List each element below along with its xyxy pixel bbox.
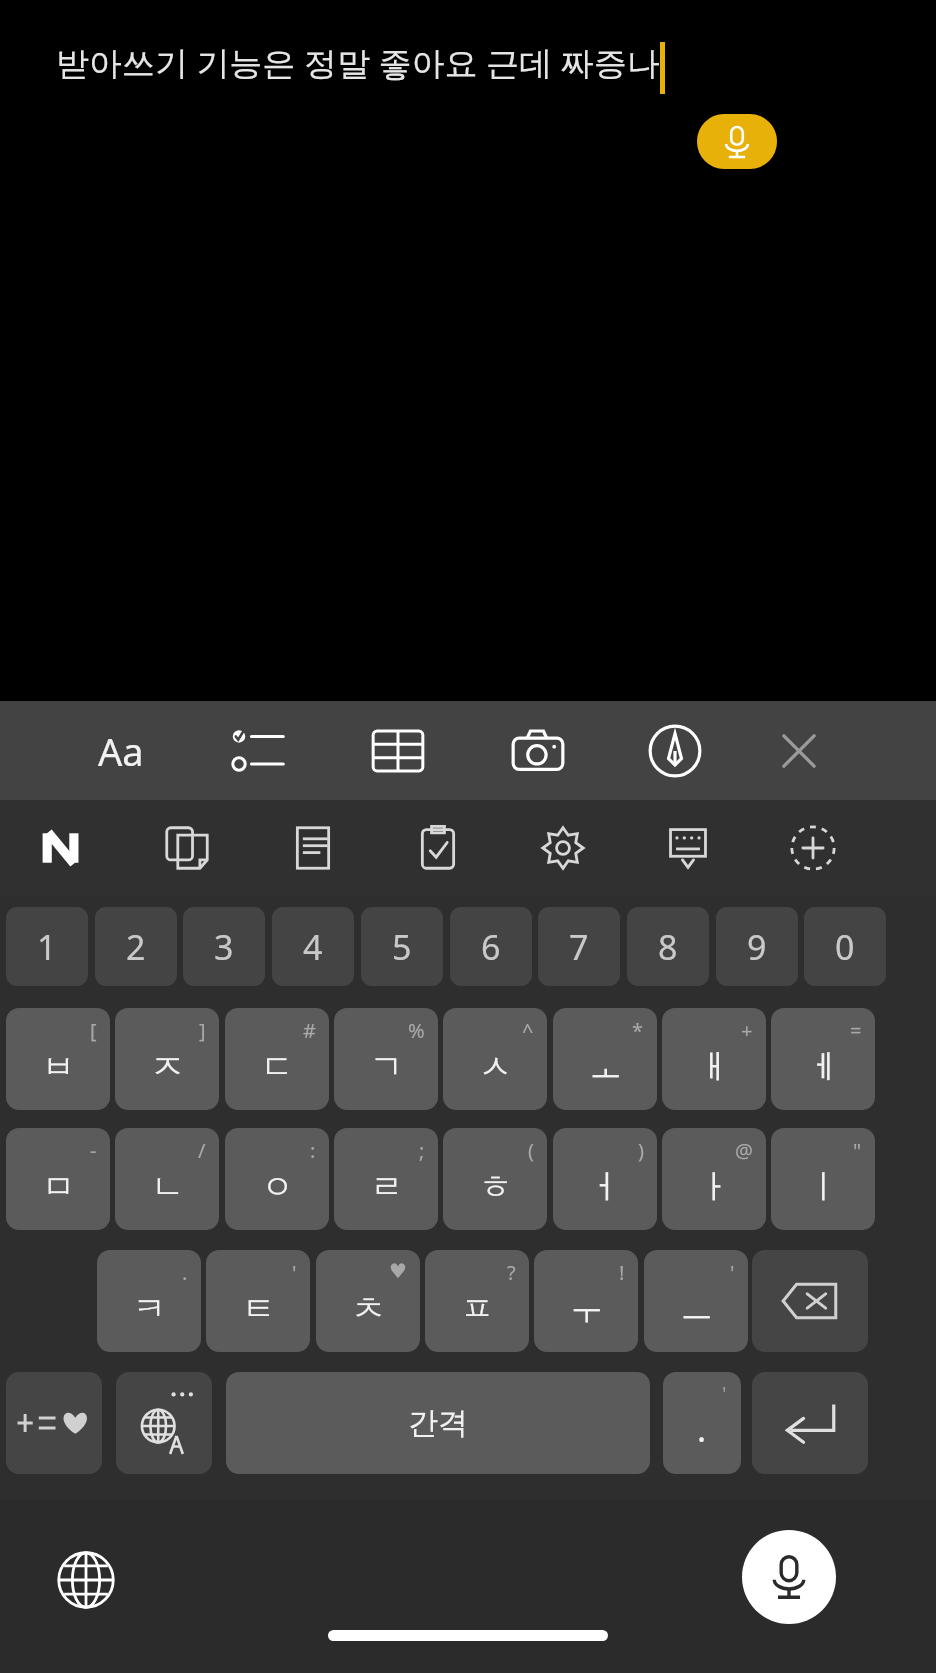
staticText: % bbox=[408, 1017, 425, 1044]
button[interactable]: [ bbox=[6, 1008, 110, 1110]
staticText: . bbox=[697, 1406, 707, 1452]
button[interactable]: - bbox=[6, 1128, 110, 1230]
staticText: ㅜ bbox=[570, 1288, 603, 1330]
staticText: 3 bbox=[214, 924, 234, 970]
staticText: 간격 bbox=[408, 1404, 468, 1442]
button[interactable]: Checklist bbox=[214, 706, 304, 796]
staticText: ♥ bbox=[389, 1259, 407, 1282]
button[interactable]: 7 bbox=[538, 907, 620, 986]
button[interactable]: * bbox=[553, 1008, 657, 1110]
staticText: 1 bbox=[37, 924, 57, 970]
button[interactable]: : bbox=[225, 1128, 329, 1230]
staticText: ㅏ bbox=[698, 1166, 731, 1208]
button[interactable]: Voice typing bbox=[742, 1530, 836, 1624]
button[interactable]: " bbox=[771, 1128, 875, 1230]
staticText: 받아쓰기 기능은 정말 좋아요 근데 짜증나 bbox=[56, 40, 660, 85]
staticText: ㅊ bbox=[352, 1288, 385, 1330]
button[interactable]: 4 bbox=[272, 907, 354, 986]
staticText: ; bbox=[419, 1137, 425, 1164]
button[interactable]: Change language bbox=[116, 1372, 212, 1474]
button[interactable]: Backspace bbox=[752, 1250, 868, 1352]
button[interactable]: 3 bbox=[183, 907, 265, 986]
button[interactable]: ' bbox=[206, 1250, 310, 1352]
button[interactable]: Close bbox=[754, 706, 844, 796]
staticText: 5 bbox=[392, 924, 412, 970]
staticText: / bbox=[198, 1137, 206, 1164]
staticText: " bbox=[853, 1137, 862, 1164]
staticText: ! bbox=[619, 1259, 625, 1286]
button[interactable]: ? bbox=[425, 1250, 529, 1352]
staticText: Aa bbox=[98, 725, 144, 777]
staticText: 9 bbox=[747, 924, 767, 970]
button[interactable]: Keyboard mode bbox=[646, 808, 730, 888]
staticText: . bbox=[182, 1259, 188, 1286]
staticText: ㄴ bbox=[151, 1166, 184, 1208]
button[interactable]: . bbox=[97, 1250, 201, 1352]
button[interactable]: Change keyboard bbox=[46, 1540, 126, 1620]
button[interactable]: More bbox=[771, 808, 855, 888]
button[interactable]: Symbols bbox=[6, 1372, 102, 1474]
button[interactable]: Camera bbox=[493, 706, 583, 796]
button[interactable]: Settings bbox=[521, 808, 605, 888]
button[interactable]: 2 bbox=[95, 907, 177, 986]
button[interactable]: . bbox=[663, 1372, 741, 1474]
staticText: ' bbox=[730, 1259, 735, 1286]
staticText: 2 bbox=[126, 924, 146, 970]
staticText: * bbox=[632, 1017, 644, 1044]
button[interactable]: = bbox=[771, 1008, 875, 1110]
button[interactable]: Sticker bbox=[145, 808, 229, 888]
button[interactable]: ; bbox=[334, 1128, 438, 1230]
button[interactable]: 8 bbox=[627, 907, 709, 986]
staticText: ㄱ bbox=[370, 1046, 403, 1088]
button[interactable]: 간격 bbox=[226, 1372, 650, 1474]
button[interactable]: Table bbox=[353, 706, 443, 796]
button[interactable]: ( bbox=[443, 1128, 547, 1230]
button[interactable]: 1 bbox=[6, 907, 88, 986]
button[interactable]: Draw bbox=[630, 706, 720, 796]
staticText: 8 bbox=[658, 924, 678, 970]
button[interactable]: ) bbox=[553, 1128, 657, 1230]
button[interactable]: @ bbox=[662, 1128, 766, 1230]
button[interactable]: # bbox=[225, 1008, 329, 1110]
button[interactable]: Text bbox=[271, 808, 355, 888]
button[interactable]: Enter bbox=[752, 1372, 868, 1474]
button[interactable]: Voice input bbox=[697, 114, 777, 169]
staticText: ㅣ bbox=[807, 1166, 840, 1208]
staticText: ? bbox=[507, 1259, 516, 1286]
button[interactable]: ^ bbox=[443, 1008, 547, 1110]
button[interactable]: 6 bbox=[450, 907, 532, 986]
staticText: ' bbox=[292, 1259, 297, 1286]
staticText: ㅡ bbox=[680, 1288, 713, 1330]
button[interactable]: ' bbox=[644, 1250, 748, 1352]
staticText: # bbox=[303, 1017, 316, 1044]
staticText: ㅂ bbox=[42, 1046, 75, 1088]
staticText: - bbox=[90, 1137, 97, 1164]
staticText: + bbox=[741, 1017, 753, 1044]
button[interactable]: 9 bbox=[716, 907, 798, 986]
staticText: 0 bbox=[835, 924, 855, 970]
staticText: ] bbox=[199, 1017, 206, 1044]
staticText: 7 bbox=[569, 924, 589, 970]
staticText: : bbox=[310, 1137, 316, 1164]
button[interactable]: Clipboard bbox=[396, 808, 480, 888]
button[interactable]: % bbox=[334, 1008, 438, 1110]
staticText: ㅎ bbox=[479, 1166, 512, 1208]
button[interactable]: 5 bbox=[361, 907, 443, 986]
staticText: ) bbox=[638, 1137, 644, 1164]
button[interactable]: ♥ bbox=[316, 1250, 420, 1352]
button[interactable]: / bbox=[115, 1128, 219, 1230]
staticText: ㅍ bbox=[461, 1288, 494, 1330]
button[interactable]: 0 bbox=[804, 907, 886, 986]
button[interactable]: ] bbox=[115, 1008, 219, 1110]
button[interactable]: Samsung Notes bbox=[19, 808, 103, 888]
staticText: = bbox=[850, 1017, 862, 1044]
staticText: ㅔ bbox=[807, 1046, 840, 1088]
button[interactable]: + bbox=[662, 1008, 766, 1110]
staticText: ' bbox=[722, 1380, 727, 1407]
button[interactable]: Text style bbox=[66, 706, 176, 796]
staticText: ㅅ bbox=[479, 1046, 512, 1088]
staticText: @ bbox=[735, 1137, 753, 1164]
button[interactable]: ! bbox=[534, 1250, 638, 1352]
staticText: ㅓ bbox=[589, 1166, 622, 1208]
staticText: ㅈ bbox=[151, 1046, 184, 1088]
